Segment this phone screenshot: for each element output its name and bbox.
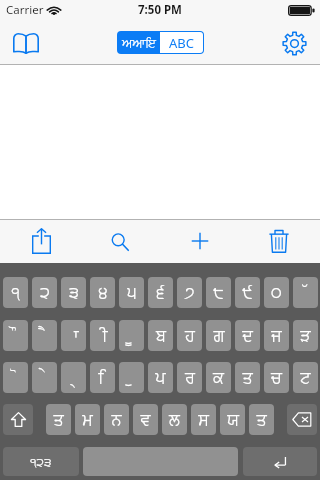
button[interactable]: ੯ [235,277,260,308]
button[interactable]: ਮ [75,404,100,435]
staticText: ਪ [155,370,166,386]
button[interactable]: ਜ [264,320,289,351]
button[interactable]: Settings [272,21,316,65]
staticText: ਿ [98,370,108,386]
button[interactable]: ੧੨੩ [3,447,79,476]
button[interactable]: Delete [257,219,301,263]
button[interactable]: ਗ [206,320,231,351]
button[interactable]: ੫ [119,277,144,308]
staticText: ਗ [213,328,225,344]
button[interactable]: ੇ [32,362,57,393]
button[interactable]: ਵ [133,404,158,435]
button[interactable]: ੈ [32,320,57,351]
staticText: ਾ [69,328,79,344]
button[interactable]: ਟ [293,362,318,393]
staticText: ੌ [13,328,18,344]
button[interactable]: ਚ [264,362,289,393]
button[interactable]: ੋ [3,362,28,393]
staticText: ਕ [213,370,224,386]
staticText: ਰ [185,370,195,386]
staticText: ਤ [242,370,253,386]
staticText: ਬ [156,328,166,344]
staticText: ੈ [42,328,47,344]
button[interactable]: ੱ [293,277,318,308]
staticText: ੧ [11,285,20,301]
button[interactable]: ੂ [119,320,144,351]
staticText: 7:50 PM [138,2,182,18]
button[interactable]: ਿ [90,362,115,393]
staticText: ੋ [13,370,18,386]
staticText: ਤ [256,412,267,428]
button[interactable]: ੦ [264,277,289,308]
button[interactable]: ੍ [61,362,86,393]
button[interactable]: ਰ [177,362,202,393]
button[interactable]: ਤ [235,362,260,393]
staticText: ਚ [271,370,282,386]
button[interactable]: ABC [160,32,203,53]
button[interactable]: ੬ [148,277,173,308]
button[interactable]: ਾ [61,320,86,351]
staticText: Carrier [6,2,44,18]
staticText: ੭ [184,285,195,301]
staticText: ੀ [98,328,108,344]
button[interactable]: ਲ [162,404,187,435]
staticText: ੱ [303,285,308,301]
button[interactable]: ੩ [61,277,86,308]
button[interactable]: ੧ [3,277,28,308]
button[interactable]: ੁ [119,362,144,393]
staticText: ਯ [227,412,239,428]
staticText: ੍ [71,370,76,386]
staticText: ੯ [242,285,253,301]
staticText: ੂ [129,328,134,344]
button[interactable]: ੀ [90,320,115,351]
button[interactable]: ੮ [206,277,231,308]
button[interactable]: ੭ [177,277,202,308]
button[interactable]: ਹ [177,320,202,351]
staticText: ੫ [127,285,137,301]
button[interactable]: Search [98,219,142,263]
staticText: ਲ [169,412,180,428]
staticText: ਹ [185,328,195,344]
staticText: ABC [169,34,194,52]
staticText: ੁ [129,370,134,386]
staticText: ੦ [271,285,282,301]
staticText: ੜ [300,328,311,344]
staticText: ਜ [271,328,282,344]
staticText: ਤ [53,412,64,428]
staticText: ਦ [242,328,253,344]
button[interactable]: ਸ [191,404,216,435]
staticText: ੇ [42,370,47,386]
button[interactable]: ਤ [46,404,71,435]
button[interactable]: ੌ [3,320,28,351]
button[interactable]: Return [243,447,317,476]
button[interactable]: ੜ [293,320,318,351]
button[interactable]: ੨ [32,277,57,308]
staticText: ੩ [69,285,79,301]
button[interactable]: ਨ [104,404,129,435]
button[interactable]: ੪ [90,277,115,308]
button[interactable]: Add [178,219,222,263]
button[interactable]: Dictionary [4,21,48,65]
button[interactable]: ਦ [235,320,260,351]
staticText: ਵ [140,412,151,428]
staticText: ੨ [40,285,50,301]
staticText: ਮ [82,412,93,428]
button[interactable]: ਯ [220,404,245,435]
staticText: ਟ [300,370,311,386]
staticText: ੮ [213,285,224,301]
button[interactable]: ਤ [249,404,274,435]
button[interactable]: ਕ [206,362,231,393]
button[interactable]: ਬ [148,320,173,351]
staticText: ਅਆਇ [122,37,156,49]
staticText: ਸ [198,412,209,428]
button[interactable]: Backspace [287,404,317,435]
staticText: ੬ [156,285,165,301]
staticText: ੧੨੩ [30,456,52,468]
staticText: ਨ [111,412,122,428]
staticText: ੪ [98,285,108,301]
button[interactable]: Shift [3,404,33,435]
button[interactable]: ਪ [148,362,173,393]
button[interactable]: Share [19,219,63,263]
button[interactable]: ਅਆਇ [117,31,160,54]
